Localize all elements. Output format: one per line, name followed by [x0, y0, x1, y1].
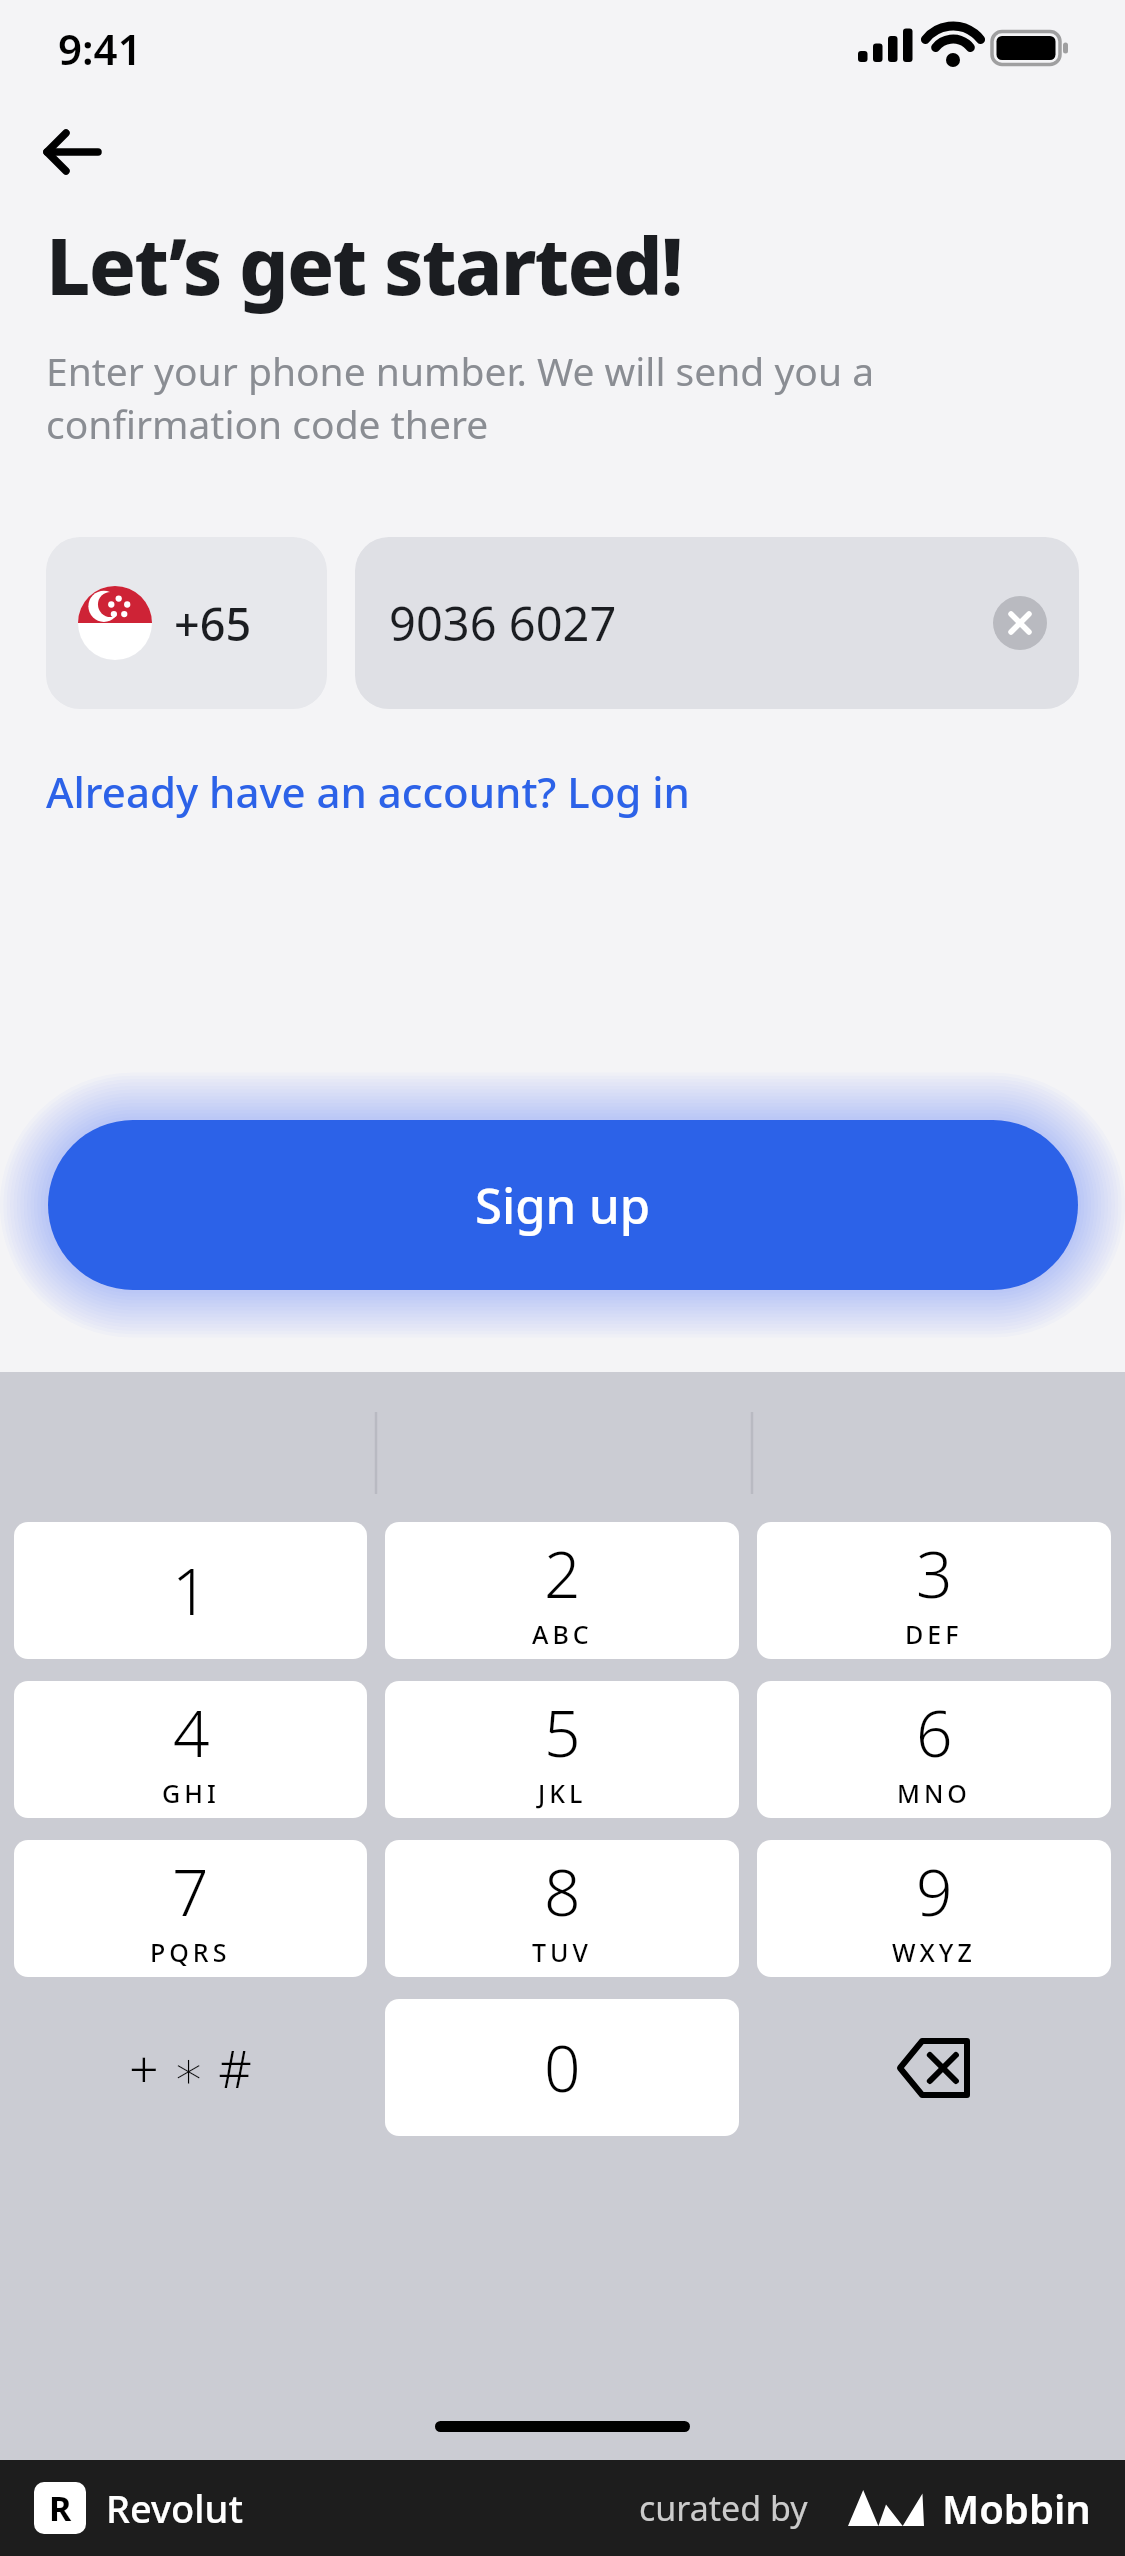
staticText: GHI	[162, 1776, 220, 1810]
staticText: PQRS	[150, 1935, 231, 1969]
button[interactable]: Sign up	[48, 1120, 1078, 1290]
button[interactable]: Clear text	[993, 596, 1047, 650]
staticText: 8	[544, 1848, 581, 1935]
staticText: curated by	[639, 2485, 808, 2531]
staticText: 3	[916, 1530, 953, 1617]
button[interactable]: 7	[14, 1840, 367, 1977]
button[interactable]: +65	[46, 537, 327, 709]
staticText: 1	[172, 1547, 209, 1634]
button[interactable]: Plus, star, hash	[14, 1999, 367, 2136]
button[interactable]: 5	[385, 1681, 739, 1818]
staticText: TUV	[532, 1935, 592, 1969]
staticText: Revolut	[106, 2482, 243, 2534]
staticText: 9:41	[58, 20, 142, 77]
staticText: Let’s get started!	[46, 212, 682, 318]
button[interactable]: Already have an account? Log in	[46, 763, 690, 820]
staticText: +65	[174, 593, 252, 654]
button[interactable]: 3	[757, 1522, 1111, 1659]
staticText: DEF	[905, 1617, 963, 1651]
staticText: Mobbin	[942, 2481, 1091, 2535]
button[interactable]: Back	[24, 104, 120, 200]
staticText: MNO	[897, 1776, 971, 1810]
staticText: 5	[544, 1689, 581, 1776]
button[interactable]: 6	[757, 1681, 1111, 1818]
staticText: + ∗ #	[129, 2032, 252, 2103]
button[interactable]: 8	[385, 1840, 739, 1977]
button[interactable]: 9	[757, 1840, 1111, 1977]
staticText: ABC	[532, 1617, 593, 1651]
staticText: 9	[916, 1848, 953, 1935]
staticText: 2	[544, 1530, 581, 1617]
staticText: 6	[916, 1689, 953, 1776]
staticText: 0	[544, 2024, 581, 2111]
staticText: Sign up	[475, 1172, 651, 1239]
button[interactable]: 9036 6027	[355, 537, 1079, 709]
staticText: 9036 6027	[389, 591, 617, 655]
staticText: R	[49, 2485, 72, 2531]
staticText: 7	[172, 1848, 209, 1935]
staticText: 4	[173, 1689, 210, 1776]
button[interactable]: Backspace	[757, 1999, 1111, 2136]
button[interactable]: 1	[14, 1522, 367, 1659]
staticText: JKL	[538, 1776, 587, 1810]
staticText: Enter your phone number. We will send yo…	[46, 344, 875, 451]
staticText: Already have an account? Log in	[46, 763, 690, 820]
button[interactable]: 0	[385, 1999, 739, 2136]
staticText: WXYZ	[892, 1935, 976, 1969]
button[interactable]: 4	[14, 1681, 367, 1818]
button[interactable]: 2	[385, 1522, 739, 1659]
